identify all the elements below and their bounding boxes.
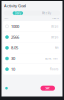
button[interactable]: 2566 [3,32,61,42]
button[interactable]: 8.05 [3,43,61,53]
button[interactable]: Save [40,86,55,91]
button[interactable]: Add goal [4,85,9,91]
button[interactable]: Weekly [32,11,60,15]
staticText: steps [51,35,58,39]
staticText: 10 [11,66,15,72]
staticText: 1000 [11,24,19,29]
staticText: Weekly [42,11,51,15]
staticText: 30 [11,56,15,61]
button[interactable]: 10 [3,64,61,74]
staticText: Activity Goal [4,3,26,8]
staticText: 2566 [11,34,19,40]
staticText: Save [45,86,50,90]
staticText: GOAL [4,18,8,19]
staticText: steps [51,25,58,28]
staticText: floors [50,67,58,71]
staticText: Daily [15,11,21,15]
button[interactable]: 30 [3,53,61,64]
button[interactable]: Daily [4,11,32,15]
button[interactable]: 1000 [3,21,61,32]
staticText: activity rate [52,18,59,19]
staticText: active min [45,57,58,60]
staticText: 8.05 [11,45,18,50]
staticText: km [55,46,58,49]
